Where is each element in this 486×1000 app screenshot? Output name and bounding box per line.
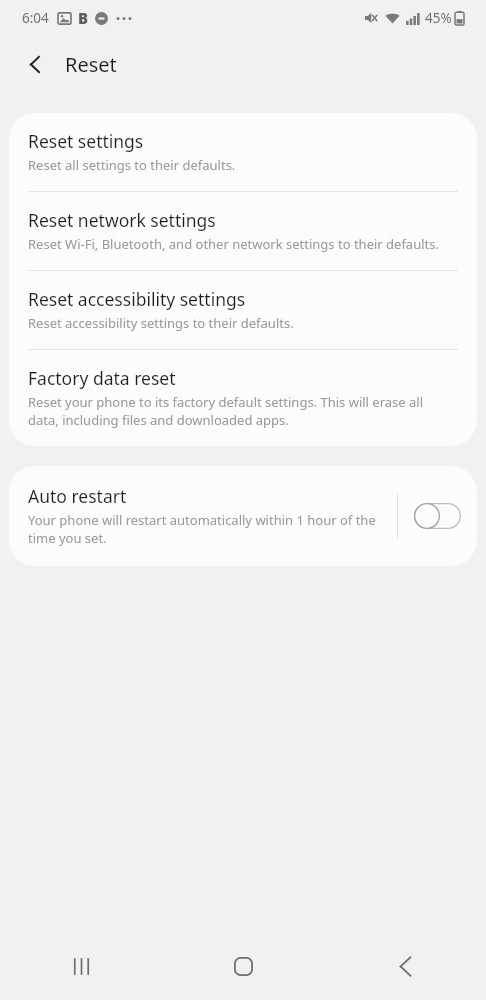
button[interactable]: Reset accessibility settings [9, 271, 477, 349]
staticText: 45% [425, 9, 452, 27]
staticText: Reset accessibility settings to their de… [28, 314, 294, 332]
staticText: Reset accessibility settings [28, 287, 246, 311]
button[interactable]: Auto restart [9, 466, 397, 566]
button[interactable]: Auto restart toggle [398, 487, 477, 545]
staticText: Reset all settings to their defaults. [28, 156, 236, 174]
staticText: Reset network settings [28, 208, 216, 232]
button[interactable]: Back [324, 932, 486, 1000]
button[interactable]: Home [162, 932, 324, 1000]
staticText: Reset Wi-Fi, Bluetooth, and other networ… [28, 235, 439, 253]
button[interactable]: Reset settings [9, 113, 477, 191]
staticText: Reset your phone to its factory default … [28, 393, 455, 429]
button[interactable]: Back [12, 41, 58, 87]
button[interactable]: Recent apps [0, 932, 162, 1000]
button[interactable]: Reset network settings [9, 192, 477, 270]
staticText: B [78, 8, 89, 28]
staticText: Reset [65, 51, 117, 78]
staticText: Reset settings [28, 129, 144, 153]
staticText: Your phone will restart automatically wi… [28, 511, 389, 547]
staticText: Factory data reset [28, 366, 176, 390]
staticText: Auto restart [28, 484, 127, 508]
staticText: 6:04 [22, 9, 49, 27]
button[interactable]: Factory data reset [9, 350, 477, 446]
